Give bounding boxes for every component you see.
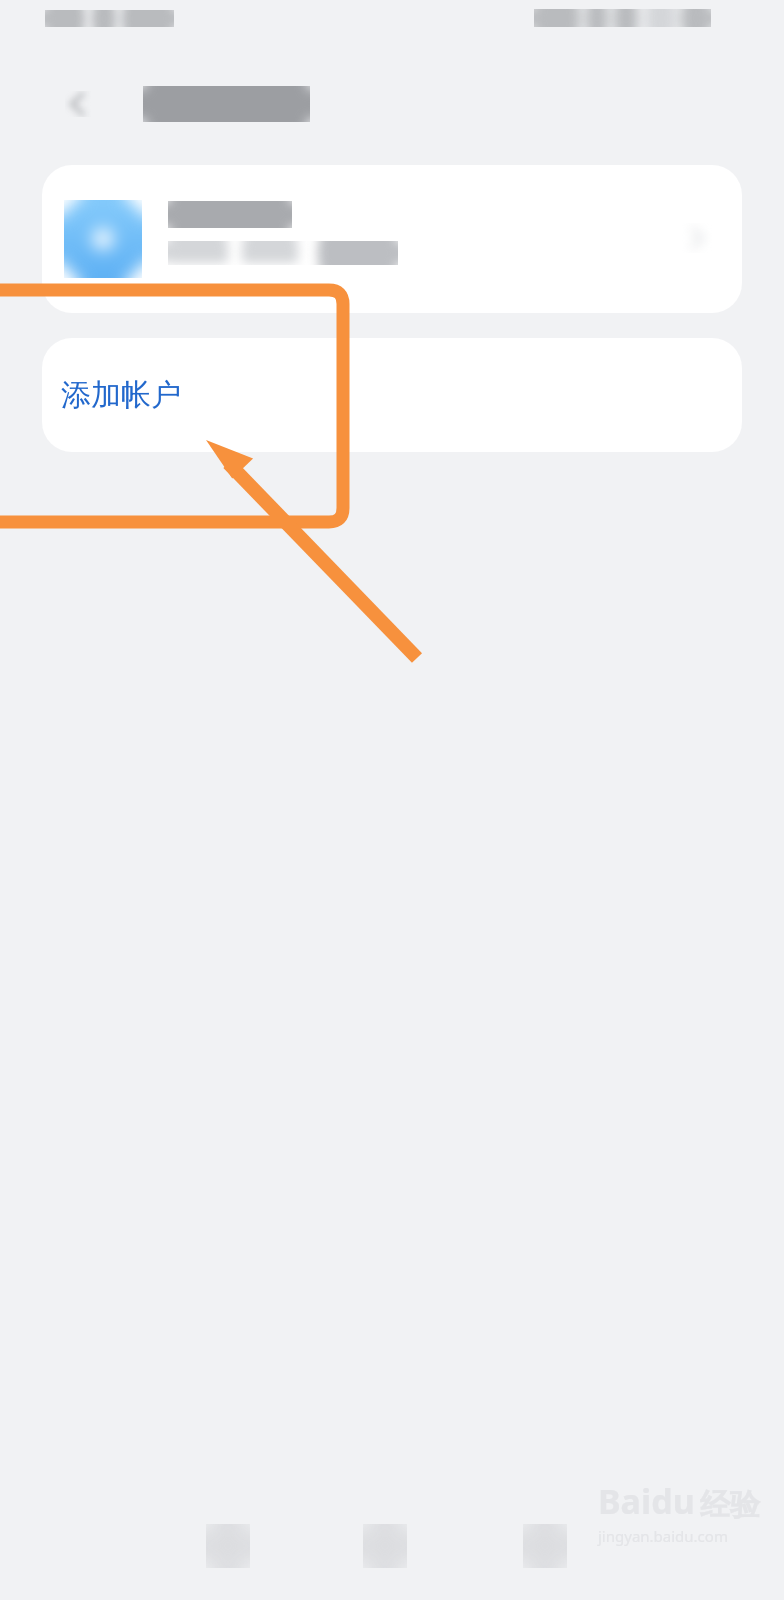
staticText: 经验 [700, 1486, 760, 1524]
staticText: 添加帐户 [61, 376, 181, 414]
button[interactable]: Navigation tab [194, 1512, 262, 1580]
button[interactable]: Navigation tab [351, 1512, 419, 1580]
staticText: Baidu [598, 1478, 695, 1524]
staticText: jingyan.baidu.com [598, 1526, 728, 1546]
button[interactable] [42, 165, 742, 313]
button[interactable]: 添加帐户 [42, 338, 742, 452]
button[interactable]: Navigation tab [511, 1512, 579, 1580]
button[interactable]: Back [52, 78, 104, 130]
